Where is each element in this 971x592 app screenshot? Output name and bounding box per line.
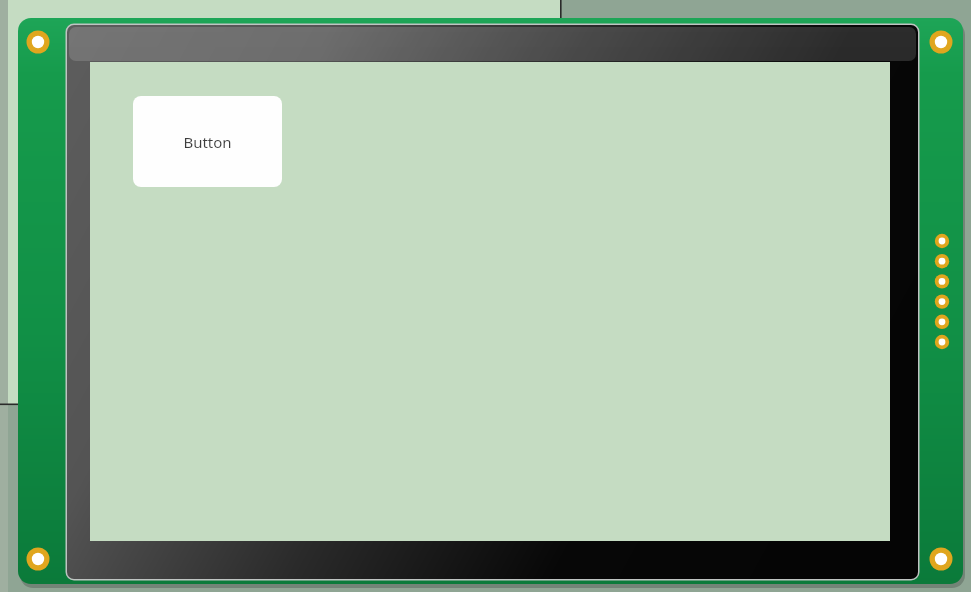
staticText: Button <box>183 132 232 152</box>
button[interactable]: Button <box>133 96 282 187</box>
